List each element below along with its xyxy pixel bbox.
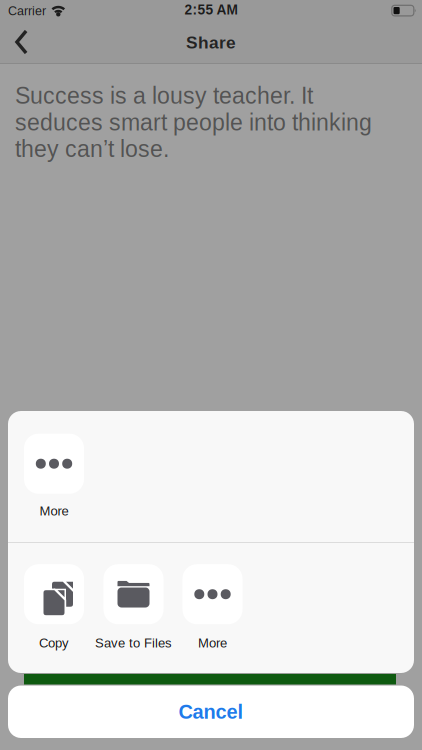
staticText: 2:55 AM <box>184 2 237 17</box>
staticText: they can’t lose. <box>15 136 169 162</box>
button[interactable]: Cancel <box>8 685 414 738</box>
staticText: Share <box>186 33 236 52</box>
staticText: seduces smart people into thinking <box>15 109 372 135</box>
staticText: Carrier <box>8 4 46 18</box>
button[interactable]: Copy <box>4 563 104 651</box>
button[interactable]: Save to Files <box>83 563 183 651</box>
button[interactable]: Back <box>6 27 36 57</box>
staticText: Cancel <box>178 701 243 723</box>
staticText: Save to Files <box>95 636 172 650</box>
staticText: More <box>198 636 227 650</box>
staticText: Copy <box>39 636 69 650</box>
button[interactable]: More <box>4 432 104 519</box>
staticText: Success is a lousy teacher. It <box>15 83 313 109</box>
staticText: More <box>39 504 68 518</box>
button[interactable]: More <box>162 563 262 651</box>
